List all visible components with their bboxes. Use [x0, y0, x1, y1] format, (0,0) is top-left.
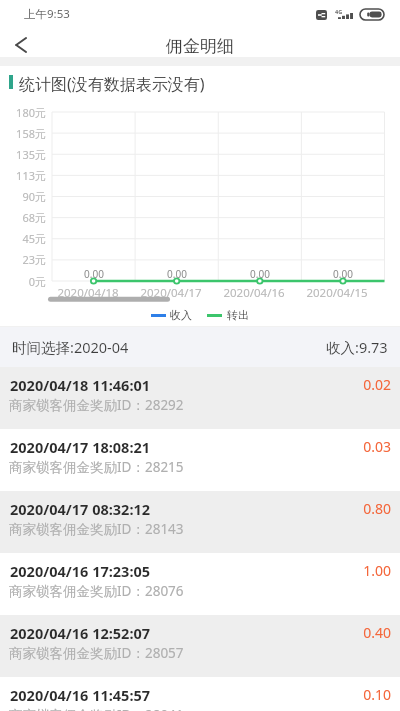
staticText: 收入: [170, 308, 192, 322]
staticText: 90元: [0, 189, 46, 204]
button[interactable]: Back: [4, 30, 38, 59]
staticText: 2020/04/16 11:45:57: [10, 685, 151, 705]
button[interactable]: 2020/04/16 11:45:57: [0, 677, 400, 711]
staticText: 2020/04/17 08:32:12: [10, 499, 151, 519]
button[interactable]: 时间选择:2020-04: [0, 327, 400, 367]
staticText: 45元: [0, 231, 46, 246]
staticText: 0.80: [0, 499, 391, 518]
staticText: 23元: [0, 252, 46, 267]
staticText: 0.00: [313, 267, 373, 281]
staticText: 0.03: [0, 437, 391, 456]
staticText: 0.40: [0, 623, 391, 642]
staticText: 商家锁客佣金奖励ID：28057: [9, 644, 184, 662]
staticText: 2020/04/17 18:08:21: [10, 437, 151, 457]
staticText: 1.00: [0, 561, 391, 580]
staticText: 收入:9.73: [326, 337, 388, 357]
staticText: 商家锁客佣金奖励ID：28041: [9, 706, 184, 711]
staticText: 商家锁客佣金奖励ID：28143: [9, 520, 184, 538]
staticText: 商家锁客佣金奖励ID：28292: [9, 396, 184, 414]
staticText: 佣金明细: [166, 36, 234, 57]
staticText: 2020/04/18 11:46:01: [10, 375, 151, 395]
staticText: 180元: [0, 105, 46, 120]
button[interactable]: 2020/04/16 17:23:05: [0, 553, 400, 615]
staticText: 4G: [335, 8, 343, 15]
button[interactable]: 2020/04/17 18:08:21: [0, 429, 400, 491]
staticText: 2020/04/18: [46, 285, 130, 301]
staticText: 商家锁客佣金奖励ID：28215: [9, 458, 184, 476]
staticText: 0.02: [0, 375, 391, 394]
staticText: 2020/04/15: [295, 285, 379, 301]
staticText: 113元: [0, 168, 46, 183]
button[interactable]: 2020/04/18 11:46:01: [0, 367, 400, 429]
staticText: 2020/04/16 17:23:05: [10, 561, 151, 581]
staticText: 0.10: [0, 685, 391, 704]
staticText: 0元: [0, 274, 46, 289]
staticText: 上午9:53: [24, 6, 70, 22]
staticText: 0.00: [64, 267, 124, 281]
staticText: 135元: [0, 147, 46, 162]
staticText: 0.00: [147, 267, 207, 281]
staticText: 2020/04/17: [129, 285, 213, 301]
staticText: 158元: [0, 126, 46, 141]
button[interactable]: 2020/04/17 08:32:12: [0, 491, 400, 553]
staticText: 68元: [0, 210, 46, 225]
staticText: 2020/04/16: [212, 285, 296, 301]
button[interactable]: 2020/04/16 12:52:07: [0, 615, 400, 677]
staticText: 转出: [227, 308, 249, 322]
staticText: 时间选择:2020-04: [12, 337, 129, 357]
staticText: 0.00: [230, 267, 290, 281]
staticText: 商家锁客佣金奖励ID：28076: [9, 582, 184, 600]
staticText: 2020/04/16 12:52:07: [10, 623, 151, 643]
staticText: 统计图(没有数据表示没有): [19, 73, 205, 95]
